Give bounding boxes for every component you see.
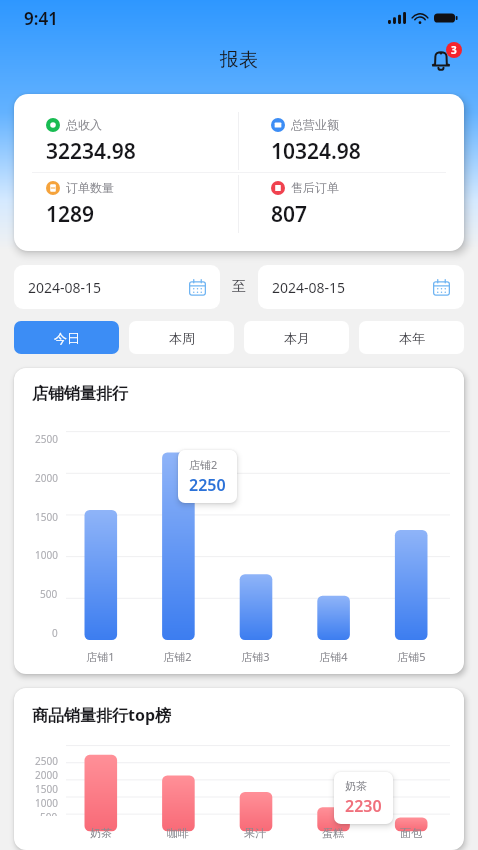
- staticText: 店铺2: [189, 457, 218, 472]
- staticText: 总收入: [66, 117, 102, 132]
- button[interactable]: 店铺销量排行: [14, 368, 464, 674]
- staticText: 本周: [169, 330, 195, 346]
- button[interactable]: 订单数量: [14, 173, 238, 235]
- button[interactable]: Notifications: [426, 43, 460, 77]
- staticText: 2024-08-15: [28, 278, 102, 297]
- staticText: 店铺1: [86, 649, 115, 664]
- staticText: 9:41: [24, 7, 58, 30]
- staticText: 1500: [35, 782, 58, 796]
- button[interactable]: 本周: [129, 321, 234, 354]
- staticText: 售后订单: [291, 180, 339, 195]
- staticText: 总营业额: [291, 117, 339, 132]
- staticText: 报表: [220, 48, 258, 72]
- button[interactable]: 售后订单: [239, 173, 464, 235]
- button[interactable]: 总收入: [14, 110, 238, 172]
- staticText: 果汁: [244, 826, 266, 840]
- button[interactable]: 本月: [244, 321, 349, 354]
- staticText: 807: [271, 200, 308, 229]
- button[interactable]: 总营业额: [239, 110, 464, 172]
- button[interactable]: 本年: [359, 321, 464, 354]
- staticText: 店铺销量排行: [32, 384, 128, 404]
- staticText: 2000: [35, 768, 58, 782]
- staticText: 2500: [35, 754, 58, 768]
- staticText: 至: [232, 278, 246, 296]
- staticText: 1500: [35, 510, 58, 524]
- staticText: 奶茶: [345, 779, 367, 793]
- staticText: 本年: [399, 330, 425, 346]
- staticText: 商品销量排行top榜: [32, 704, 172, 726]
- staticText: 奶茶: [90, 826, 112, 840]
- staticText: 500: [40, 587, 58, 601]
- staticText: 本月: [284, 330, 310, 346]
- staticText: 1289: [46, 200, 95, 229]
- staticText: 10324.98: [271, 137, 361, 166]
- staticText: 咖啡: [167, 826, 189, 840]
- button[interactable]: 今日: [14, 321, 119, 354]
- staticText: 订单数量: [66, 180, 114, 195]
- staticText: 1000: [35, 796, 58, 810]
- staticText: 店铺2: [163, 649, 192, 664]
- staticText: 2024-08-15: [272, 278, 346, 297]
- staticText: 店铺3: [241, 649, 270, 664]
- button[interactable]: 2024-08-15: [258, 265, 464, 309]
- staticText: 面包: [400, 826, 422, 840]
- button[interactable]: 商品销量排行top榜: [14, 688, 464, 850]
- staticText: 500: [40, 810, 58, 816]
- staticText: 2230: [345, 795, 382, 817]
- button[interactable]: 2024-08-15: [14, 265, 220, 309]
- staticText: 0: [52, 626, 58, 640]
- staticText: 蛋糕: [322, 826, 344, 840]
- staticText: 1000: [35, 548, 58, 562]
- staticText: 2000: [35, 471, 58, 485]
- staticText: 今日: [54, 330, 80, 346]
- staticText: 3: [451, 43, 457, 57]
- staticText: 2250: [189, 474, 226, 496]
- staticText: 店铺5: [397, 649, 426, 664]
- staticText: 店铺4: [319, 649, 348, 664]
- staticText: 2500: [35, 432, 58, 446]
- staticText: 32234.98: [46, 137, 136, 166]
